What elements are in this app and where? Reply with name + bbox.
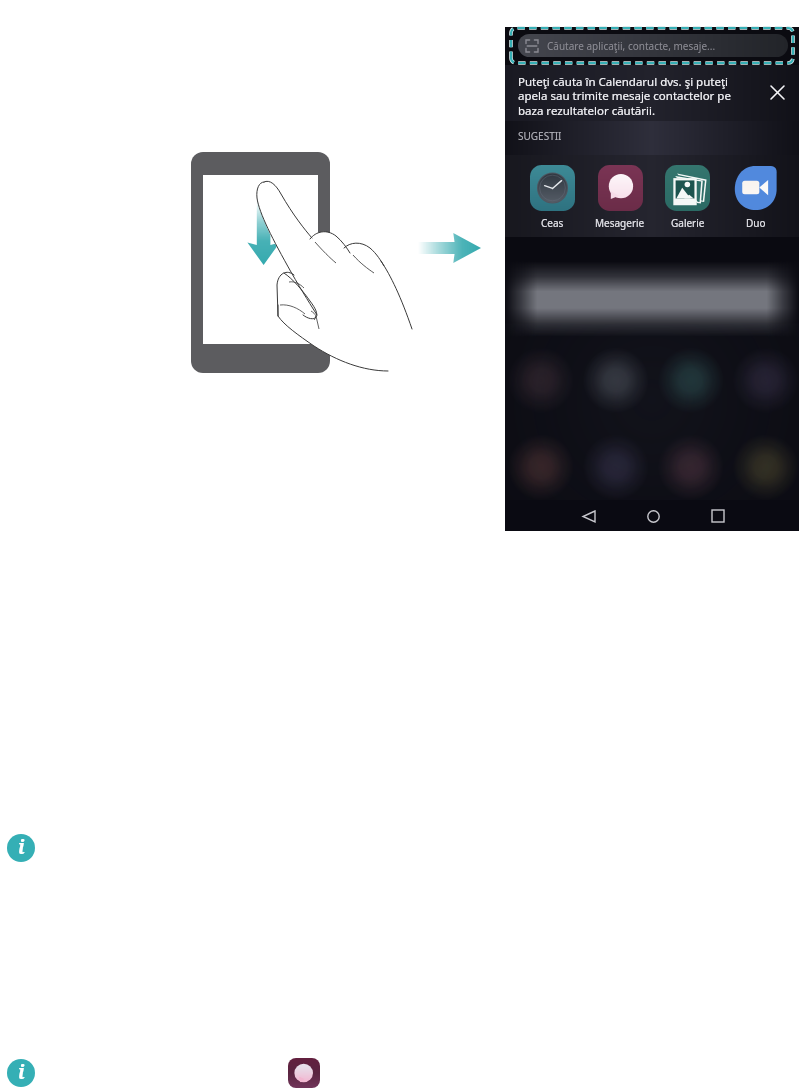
button[interactable]: Information [7, 1059, 35, 1087]
button[interactable]: Duo [722, 165, 788, 230]
button[interactable]: Messaging app [288, 1058, 320, 1088]
button[interactable]: Close [763, 78, 791, 106]
button[interactable]: Ceas [519, 165, 585, 230]
button[interactable]: Home [638, 501, 668, 531]
button[interactable]: Căutare aplicaţii, contacte, mesaje... [518, 34, 788, 57]
button[interactable]: Galerie [654, 165, 720, 230]
button[interactable]: Recents [703, 501, 733, 531]
button[interactable]: Back [573, 501, 603, 531]
staticText: Mesagerie [595, 216, 645, 230]
staticText: i [18, 834, 25, 860]
button[interactable]: Information [7, 834, 35, 862]
staticText: Puteţi căuta în Calendarul dvs. şi puteţ… [518, 74, 746, 119]
staticText: i [18, 1059, 25, 1085]
staticText: SUGESTII [518, 129, 562, 143]
button[interactable]: Mesagerie [587, 165, 653, 230]
staticText: Ceas [541, 216, 564, 230]
staticText: Duo [746, 216, 766, 230]
staticText: Căutare aplicaţii, contacte, mesaje... [547, 39, 716, 53]
staticText: Galerie [671, 216, 705, 230]
